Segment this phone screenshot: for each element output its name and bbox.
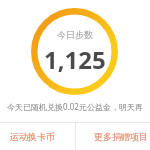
staticText: 运动换卡币 — [10, 131, 55, 142]
button[interactable]: 更多捐赠项目 — [76, 123, 150, 150]
staticText: 今天已随机兑换0.02元公益金，明天再接再厉! — [4, 101, 146, 112]
staticText: 1,125 — [44, 43, 106, 76]
staticText: 更多捐赠项目 — [94, 131, 148, 142]
button[interactable]: 运动换卡币 — [0, 123, 75, 150]
staticText: 今日步数 — [57, 29, 93, 40]
